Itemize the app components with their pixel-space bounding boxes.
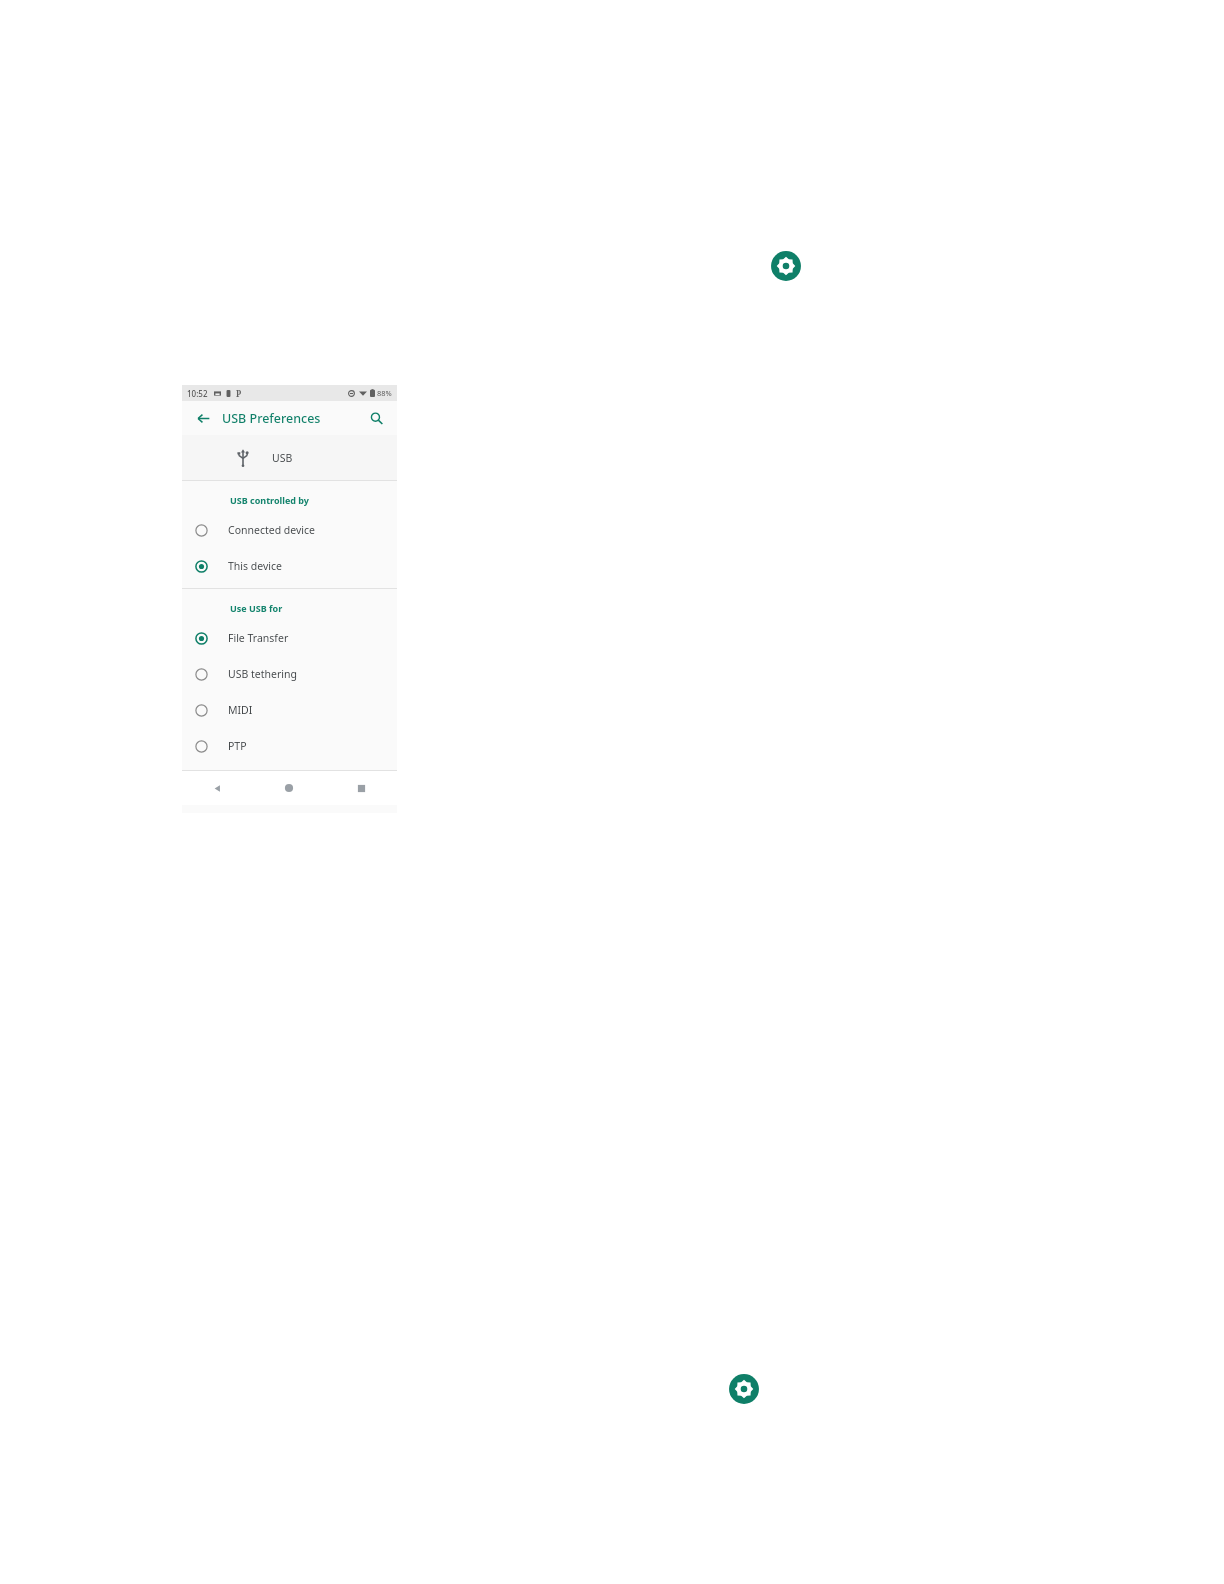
staticText: File Transfer (228, 631, 289, 645)
button[interactable]: Connected device (182, 512, 397, 548)
button[interactable]: Back (192, 407, 214, 429)
staticText: 10:52 (187, 388, 208, 399)
staticText: PTP (228, 739, 247, 753)
button[interactable]: Home (253, 771, 325, 805)
staticText: Use USB for (230, 602, 283, 614)
button[interactable]: File Transfer (182, 620, 397, 656)
button[interactable]: MIDI (182, 692, 397, 728)
button[interactable]: USB tethering (182, 656, 397, 692)
staticText: Connected device (228, 523, 316, 537)
button[interactable]: Settings (766, 246, 806, 286)
button[interactable]: USB (182, 435, 397, 480)
button[interactable]: Settings (724, 1369, 764, 1409)
staticText: MIDI (228, 703, 253, 717)
button[interactable]: Back (182, 771, 253, 805)
button[interactable]: This device (182, 548, 397, 584)
staticText: 88% (377, 388, 392, 398)
staticText: P (236, 388, 242, 399)
staticText: This device (228, 559, 282, 573)
staticText: USB tethering (228, 667, 297, 681)
button[interactable]: Search (365, 407, 387, 429)
button[interactable]: PTP (182, 728, 397, 764)
staticText: USB Preferences (222, 410, 321, 427)
staticText: USB controlled by (230, 494, 309, 506)
button[interactable]: Recent apps (325, 771, 397, 805)
staticText: USB (272, 451, 293, 465)
